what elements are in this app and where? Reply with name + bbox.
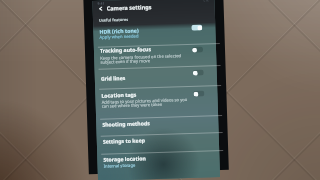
staticText: Grid lines (101, 74, 126, 82)
staticText: Storage location (103, 154, 146, 163)
staticText: Tracking auto-focus (100, 45, 152, 54)
button[interactable] (93, 20, 216, 46)
staticText: can see where they were taken (102, 102, 163, 110)
staticText: Add tags to your pictures and videos so … (101, 97, 188, 106)
button[interactable] (97, 150, 220, 173)
staticText: HDR (rich tone) (99, 26, 139, 35)
staticText: Internal storage (103, 163, 136, 170)
staticText: Settings to keep (103, 136, 146, 145)
staticText: Shooting methods (102, 119, 150, 128)
staticText: Location tags (101, 91, 136, 99)
button[interactable] (95, 85, 218, 119)
other: Back (98, 6, 104, 12)
button[interactable]: Back (92, 0, 215, 13)
button[interactable]: Toggle off (193, 90, 204, 97)
staticText: Keep the camera focused on the selected (100, 53, 181, 62)
staticText: Camera settings (106, 3, 152, 11)
button[interactable] (94, 43, 217, 70)
button[interactable]: Toggle off (192, 46, 203, 53)
staticText: 9:41 (97, 1, 105, 6)
button[interactable] (97, 132, 219, 154)
button[interactable]: Toggle on (191, 24, 202, 31)
button[interactable] (96, 115, 219, 136)
button[interactable] (95, 65, 217, 88)
staticText: LTE (203, 0, 210, 2)
button[interactable]: Toggle off (193, 69, 204, 76)
staticText: Useful features (99, 17, 129, 23)
staticText: subject even if they move (100, 58, 150, 66)
staticText: Apply when needed (99, 33, 139, 41)
